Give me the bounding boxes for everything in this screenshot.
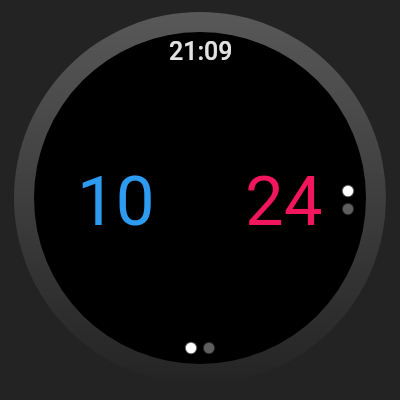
button[interactable]: 10 bbox=[77, 161, 155, 242]
staticText: 24 bbox=[245, 161, 323, 242]
staticText: 21:09 bbox=[169, 37, 233, 66]
staticText: 10 bbox=[77, 161, 155, 242]
button[interactable]: 24 bbox=[245, 161, 323, 242]
